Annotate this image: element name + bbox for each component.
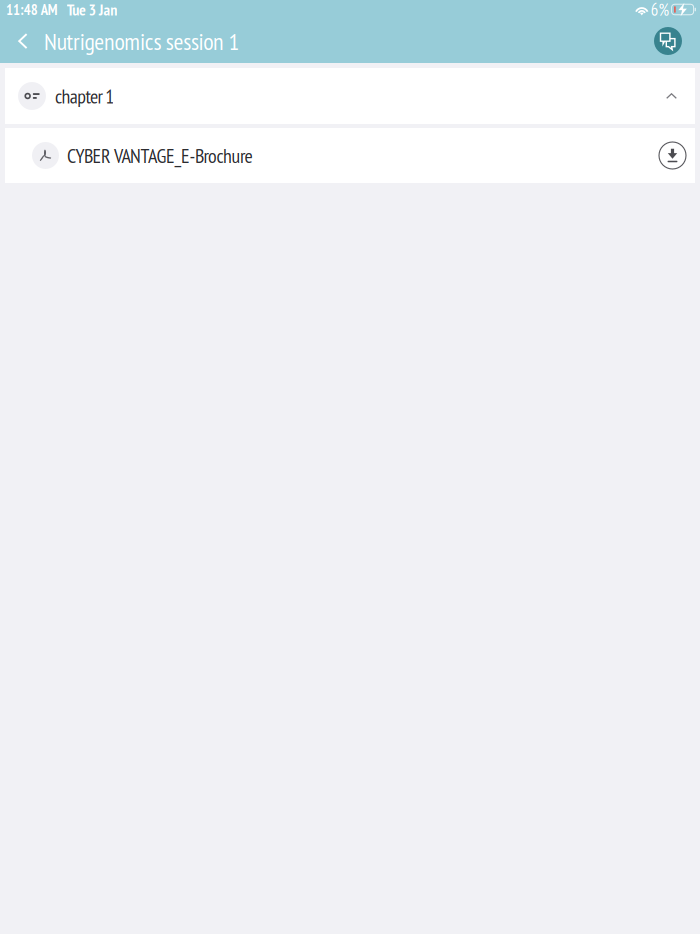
button[interactable]: CYBER VANTAGE_E-Brochure — [5, 128, 695, 183]
button[interactable]: chapter 1 — [5, 68, 695, 124]
button[interactable]: Back — [13, 19, 33, 63]
staticText: CYBER VANTAGE_E-Brochure — [67, 143, 252, 168]
button[interactable]: Discussion — [654, 27, 682, 55]
staticText: 11:48 AM — [6, 0, 58, 19]
staticText: Nutrigenomics session 1 — [44, 25, 239, 57]
staticText: chapter 1 — [55, 83, 114, 109]
staticText: Tue 3 Jan — [67, 0, 117, 20]
staticText: 6% — [651, 0, 670, 20]
